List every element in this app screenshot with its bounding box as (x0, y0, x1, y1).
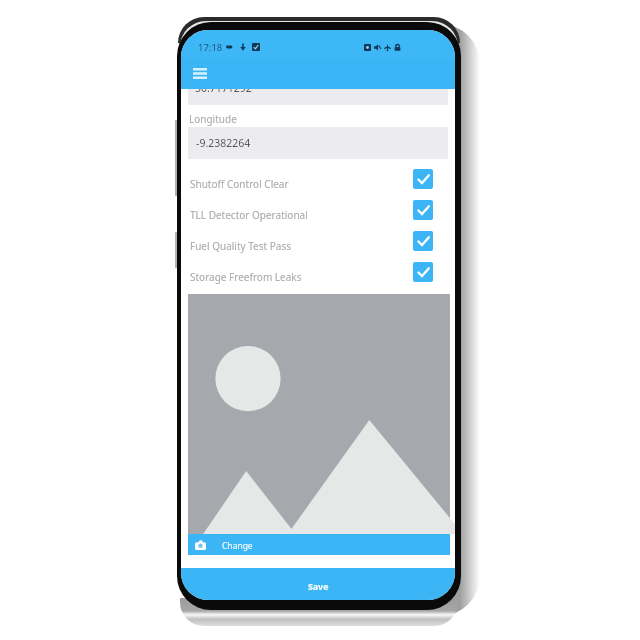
staticText: 17:18 (198, 41, 223, 54)
button[interactable]: Storage Freefrom Leaks (181, 256, 455, 287)
staticText: Longitude (189, 112, 237, 126)
staticText: Change (222, 540, 253, 552)
button[interactable]: Shutoff Control Clear (181, 163, 455, 194)
staticText: TLL Detector Operational (190, 208, 308, 222)
staticText: Storage Freefrom Leaks (190, 270, 302, 284)
staticText: Fuel Quality Test Pass (190, 239, 291, 253)
staticText: 50.7171292 (195, 89, 252, 95)
staticText: Save (308, 581, 329, 593)
button[interactable]: Change (188, 534, 450, 555)
staticText: Shutoff Control Clear (190, 177, 289, 191)
button[interactable]: Open navigation menu (185, 58, 215, 89)
button[interactable]: TLL Detector Operational (181, 194, 455, 225)
staticText: -9.2382264 (196, 136, 251, 150)
button[interactable]: Save (181, 568, 455, 600)
button[interactable]: Fuel Quality Test Pass (181, 225, 455, 256)
